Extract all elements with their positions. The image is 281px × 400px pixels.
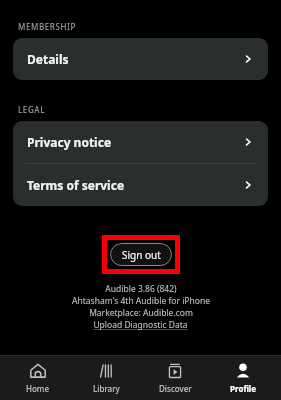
- staticText: Home: [26, 383, 50, 394]
- staticText: Marketplace: Audible.com: [89, 307, 193, 319]
- staticText: Upload Diagnostic Data: [93, 319, 188, 331]
- other: Discover: [166, 362, 184, 380]
- button[interactable]: Privacy notice: [13, 121, 268, 163]
- other: Profile: [234, 362, 252, 380]
- button[interactable]: Library: [75, 359, 137, 397]
- button[interactable]: Home: [7, 359, 69, 397]
- staticText: Privacy notice: [27, 134, 112, 150]
- staticText: LEGAL: [18, 104, 46, 115]
- staticText: MEMBERSHIP: [18, 21, 76, 32]
- staticText: Ahtasham's 4th Audible for iPhone: [72, 295, 210, 307]
- button[interactable]: Details: [13, 38, 268, 80]
- other: Home: [29, 362, 47, 380]
- other: Library: [97, 362, 115, 380]
- staticText: Terms of service: [27, 177, 125, 193]
- button[interactable]: Terms of service: [13, 164, 268, 206]
- staticText: Details: [27, 51, 69, 67]
- staticText: Audible 3.86 (842): [105, 283, 177, 295]
- button[interactable]: Sign out: [110, 243, 172, 266]
- staticText: Library: [93, 383, 120, 394]
- button[interactable]: Profile: [212, 359, 274, 397]
- staticText: Discover: [159, 383, 192, 394]
- staticText: Profile: [230, 383, 257, 394]
- button[interactable]: Upload Diagnostic Data: [93, 319, 188, 331]
- staticText: Sign out: [122, 248, 161, 262]
- button[interactable]: Discover: [144, 359, 206, 397]
